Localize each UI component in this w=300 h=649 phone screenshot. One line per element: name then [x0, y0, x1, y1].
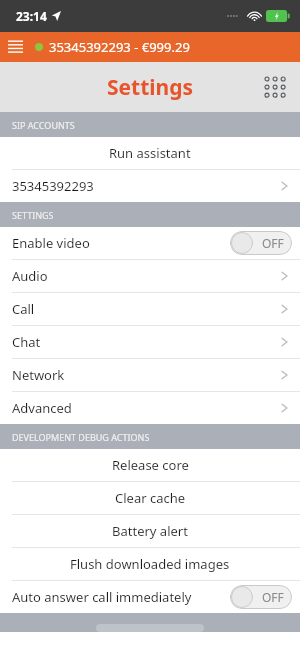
staticText: Clear cache: [115, 489, 186, 507]
button[interactable]: Flush downloaded images: [0, 548, 300, 580]
staticText: Battery alert: [112, 522, 188, 540]
button[interactable]: Call: [0, 293, 300, 325]
button[interactable]: Clear cache: [0, 482, 300, 514]
button[interactable]: Advanced: [0, 392, 300, 424]
staticText: Call: [12, 300, 35, 318]
staticText: SIP ACCOUNTS: [12, 119, 75, 131]
staticText: DEVELOPMENT DEBUG ACTIONS: [12, 431, 150, 443]
staticText: Advanced: [12, 399, 72, 417]
staticText: SETTINGS: [12, 209, 54, 221]
button[interactable]: 35345392293: [0, 170, 300, 202]
button[interactable]: Network: [0, 359, 300, 391]
staticText: Run assistant: [109, 144, 191, 162]
button[interactable]: Battery alert: [0, 515, 300, 547]
button[interactable]: Menu: [0, 39, 29, 55]
staticText: OFF: [262, 589, 284, 605]
staticText: Network: [12, 366, 65, 384]
staticText: Chat: [12, 333, 41, 351]
button[interactable]: Audio: [0, 260, 300, 292]
staticText: OFF: [262, 235, 284, 251]
staticText: Audio: [12, 267, 48, 285]
staticText: Flush downloaded images: [70, 555, 230, 573]
staticText: 35345392293 - €999.29: [49, 38, 190, 56]
button[interactable]: Auto answer call immediately toggle, off: [230, 585, 292, 609]
button[interactable]: Chat: [0, 326, 300, 358]
button[interactable]: Run assistant: [0, 137, 300, 169]
staticText: 23:14: [16, 8, 47, 24]
staticText: Release core: [112, 456, 189, 474]
staticText: Auto answer call immediately: [12, 588, 192, 606]
staticText: 35345392293: [12, 177, 94, 195]
button[interactable]: Release core: [0, 449, 300, 481]
staticText: Settings: [107, 73, 194, 102]
button[interactable]: Enable video toggle, off: [230, 231, 292, 255]
button[interactable]: Dialer keypad: [260, 72, 290, 102]
staticText: Enable video: [12, 234, 90, 252]
